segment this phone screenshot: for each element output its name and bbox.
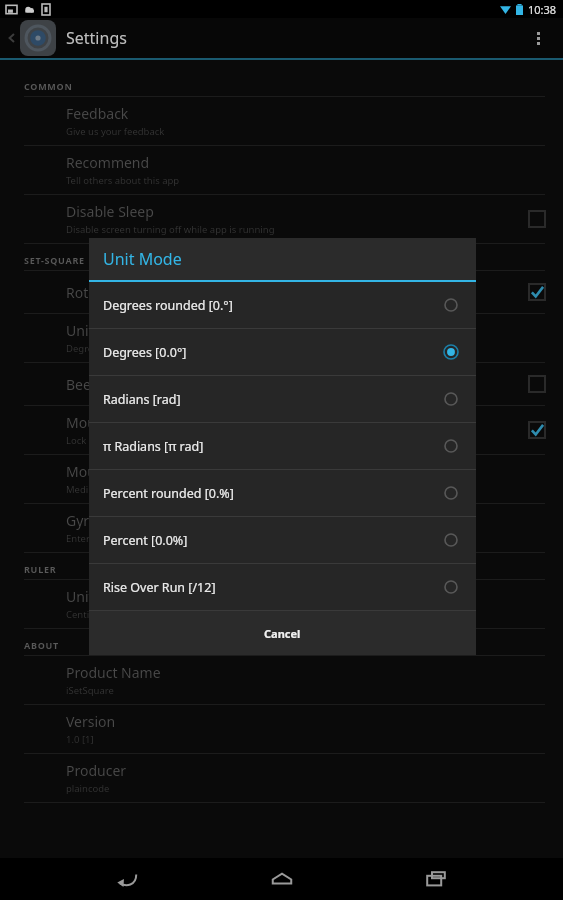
- staticText: Settings: [66, 27, 127, 49]
- button[interactable]: Feedback: [0, 97, 563, 146]
- staticText: Mount Mode: [66, 462, 151, 481]
- button[interactable]: Disable Sleep: [0, 195, 563, 244]
- staticText: Rotation: [66, 283, 122, 302]
- staticText: Unit Mode: [66, 321, 135, 340]
- staticText: Centimeters: [66, 608, 121, 621]
- staticText: Beep: [66, 375, 100, 394]
- button[interactable]: Radians [rad]: [89, 376, 476, 422]
- button[interactable]: Product Name: [0, 656, 563, 705]
- button[interactable]: Unit: [0, 580, 563, 629]
- staticText: Gyroscope: [66, 511, 136, 530]
- staticText: Feedback: [66, 104, 129, 123]
- button[interactable]: Degrees [0.0°]: [89, 329, 476, 375]
- button[interactable]: Unit Mode: [0, 314, 563, 363]
- staticText: Version: [66, 712, 116, 731]
- staticText: Degrees [0.0°]: [103, 344, 444, 361]
- button[interactable]: Rotation: [0, 271, 563, 314]
- staticText: Radians [rad]: [103, 391, 444, 408]
- staticText: Cancel: [264, 626, 301, 641]
- staticText: 1.0 [1]: [66, 733, 94, 746]
- button[interactable]: More options: [523, 23, 553, 53]
- button[interactable]: Mount: [0, 406, 563, 455]
- staticText: RULER: [24, 563, 57, 575]
- button[interactable]: Recent apps: [408, 858, 464, 900]
- button[interactable]: Beep: [0, 363, 563, 406]
- staticText: Mount: [66, 413, 110, 432]
- staticText: Lock orientation: [66, 434, 139, 447]
- button[interactable]: Recommend: [0, 146, 563, 195]
- staticText: Rise Over Run [/12]: [103, 579, 444, 596]
- staticText: π Radians [π rad]: [103, 438, 444, 455]
- button[interactable]: Back: [4, 30, 20, 46]
- staticText: iSetSquare: [66, 684, 114, 697]
- button[interactable]: π Radians [π rad]: [89, 423, 476, 469]
- button[interactable]: Version: [0, 705, 563, 754]
- staticText: Percent rounded [0.%]: [103, 485, 444, 502]
- button[interactable]: Back: [99, 858, 155, 900]
- staticText: Recommend: [66, 153, 150, 172]
- staticText: Product Name: [66, 663, 161, 682]
- button[interactable]: Home: [254, 858, 310, 900]
- staticText: ABOUT: [24, 639, 59, 651]
- staticText: Producer: [66, 761, 127, 780]
- staticText: plaincode: [66, 782, 110, 795]
- staticText: 10:38: [528, 2, 557, 17]
- button[interactable]: Percent [0.0%]: [89, 517, 476, 563]
- button[interactable]: Degrees rounded [0.°]: [89, 282, 476, 328]
- staticText: Unit Mode: [103, 248, 182, 270]
- staticText: Degrees [0.0°]: [66, 342, 130, 355]
- button[interactable]: Cancel: [89, 611, 476, 655]
- staticText: COMMON: [24, 80, 73, 92]
- staticText: Disable Sleep: [66, 202, 154, 221]
- staticText: Medium: [66, 483, 104, 496]
- staticText: Give us your feedback: [66, 125, 165, 138]
- button[interactable]: Rise Over Run [/12]: [89, 564, 476, 610]
- button[interactable]: Gyroscope: [0, 504, 563, 553]
- staticText: Disable screen turning off while app is …: [66, 223, 275, 236]
- button[interactable]: Percent rounded [0.%]: [89, 470, 476, 516]
- button[interactable]: Mount Mode: [0, 455, 563, 504]
- staticText: Enter the calibration value of the gyros…: [66, 532, 294, 545]
- staticText: Unit: [66, 587, 94, 606]
- staticText: SET-SQUARE: [24, 254, 85, 266]
- staticText: Degrees rounded [0.°]: [103, 297, 444, 314]
- button[interactable]: Producer: [0, 754, 563, 803]
- staticText: Tell others about this app: [66, 174, 180, 187]
- staticText: Percent [0.0%]: [103, 532, 444, 549]
